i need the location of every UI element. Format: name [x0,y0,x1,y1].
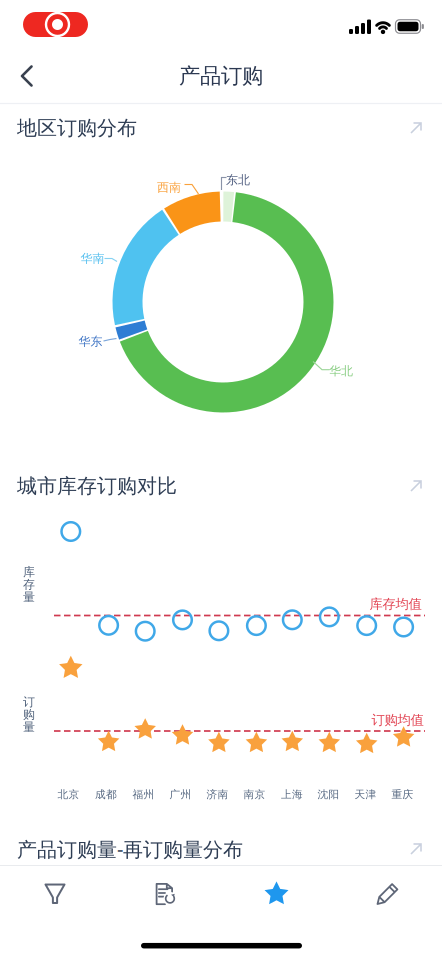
staticText: 库 [23,565,35,579]
staticText: 济南 [206,788,228,801]
button[interactable] [0,869,110,919]
staticText: 上海 [281,788,303,801]
staticText: 华南 [80,251,104,266]
staticText: 天津 [354,788,376,801]
staticText: 产品订购 [179,63,263,89]
button[interactable] [410,480,422,492]
staticText: 沈阳 [317,788,339,801]
button[interactable] [221,869,331,919]
button[interactable] [20,65,34,87]
staticText: 东北 [226,173,250,187]
button[interactable] [23,12,88,37]
staticText: 福州 [132,788,154,801]
staticText: 量 [23,590,35,604]
staticText: 成都 [95,788,117,801]
staticText: 重庆 [391,788,413,801]
staticText: 库存均值 [369,596,421,612]
staticText: 华东 [78,334,102,349]
button[interactable] [111,869,221,919]
staticText: 存 [23,577,35,592]
staticText: 城市库存订购对比 [17,474,177,498]
button[interactable] [332,869,442,919]
staticText: 广州 [169,788,191,801]
staticText: 地区订购分布 [17,116,137,140]
staticText: 订购均值 [371,712,423,728]
staticText: 南京 [243,788,265,801]
staticText: 购 [23,707,35,722]
staticText: 量 [23,720,35,734]
staticText: 华北 [329,364,353,378]
staticText: 北京 [57,788,79,801]
staticText: 西南 [157,180,181,195]
staticText: 订 [23,695,35,709]
button[interactable] [410,122,422,134]
button[interactable] [410,843,422,855]
staticText: 产品订购量-再订购量分布 [17,836,243,862]
